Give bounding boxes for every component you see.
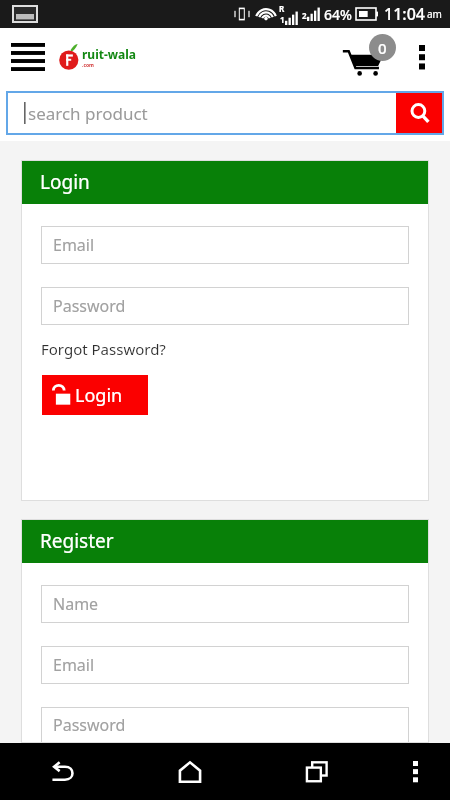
staticText: 11:04: [384, 3, 425, 25]
button[interactable]: Menu: [6, 35, 50, 79]
staticText: Password: [53, 295, 126, 317]
button[interactable]: Forgot Password?: [41, 339, 166, 359]
button[interactable]: ruit-wala: [58, 44, 137, 70]
staticText: 2: [302, 10, 307, 21]
staticText: Email: [53, 234, 95, 256]
button[interactable]: search product: [6, 91, 396, 135]
staticText: Register: [40, 528, 114, 554]
button[interactable]: Email: [41, 646, 409, 684]
button[interactable]: Password: [41, 707, 409, 743]
staticText: .com: [82, 62, 94, 69]
staticText: Login: [40, 169, 90, 195]
staticText: 1: [280, 14, 285, 25]
button[interactable]: Cart: [342, 34, 398, 80]
staticText: am: [427, 7, 442, 21]
button[interactable]: Login: [21, 160, 429, 204]
staticText: ruit-wala: [82, 46, 137, 62]
staticText: 0: [378, 38, 387, 58]
button[interactable]: Home: [126, 743, 253, 800]
button[interactable]: Search: [396, 91, 444, 135]
button[interactable]: Name: [41, 585, 409, 623]
staticText: search product: [28, 102, 148, 125]
button[interactable]: More options: [402, 37, 442, 77]
staticText: Name: [53, 593, 99, 615]
button[interactable]: Register: [21, 519, 429, 563]
staticText: Login: [75, 383, 123, 408]
button[interactable]: Back: [0, 743, 126, 800]
button[interactable]: Email: [41, 226, 409, 264]
button[interactable]: Password: [41, 287, 409, 325]
button[interactable]: More options: [380, 743, 450, 800]
staticText: Email: [53, 654, 95, 676]
button[interactable]: Recent apps: [253, 743, 380, 800]
staticText: Password: [53, 714, 126, 736]
button[interactable]: Login: [42, 375, 148, 415]
staticText: R: [279, 3, 285, 14]
staticText: 64%: [324, 5, 352, 24]
